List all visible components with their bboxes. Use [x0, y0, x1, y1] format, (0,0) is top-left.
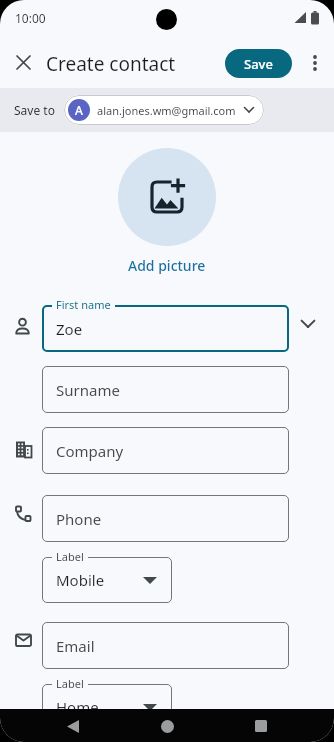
staticText: Save to: [14, 102, 55, 118]
button[interactable]: [154, 713, 180, 739]
button[interactable]: Company: [42, 427, 289, 474]
staticText: Surname: [56, 380, 120, 400]
staticText: Email: [56, 636, 95, 656]
staticText: Company: [56, 441, 124, 461]
staticText: Create contact: [46, 51, 176, 77]
button[interactable]: Add picture: [128, 256, 206, 275]
staticText: Label: [56, 549, 84, 564]
button[interactable]: Save: [225, 49, 292, 78]
staticText: A: [75, 102, 83, 118]
staticText: Zoe: [56, 319, 83, 339]
button[interactable]: Zoe: [42, 305, 289, 352]
button[interactable]: Email: [42, 622, 289, 669]
button[interactable]: Phone: [42, 495, 289, 542]
button[interactable]: [60, 713, 86, 739]
button[interactable]: Mobile: [42, 557, 172, 603]
button[interactable]: [248, 713, 274, 739]
button[interactable]: [300, 48, 330, 78]
staticText: Home: [56, 697, 99, 717]
button[interactable]: A: [64, 95, 264, 125]
staticText: Label: [56, 676, 84, 691]
staticText: Phone: [56, 509, 102, 529]
button[interactable]: [292, 308, 324, 340]
staticText: First name: [56, 297, 111, 312]
button[interactable]: Home: [42, 684, 172, 730]
staticText: alan.jones.wm@gmail.com: [97, 103, 236, 118]
staticText: Add picture: [128, 256, 206, 275]
staticText: Mobile: [56, 570, 105, 590]
staticText: Save: [244, 55, 273, 73]
button[interactable]: Surname: [42, 366, 289, 413]
button[interactable]: [118, 148, 216, 246]
button[interactable]: [8, 47, 38, 77]
staticText: 10:00: [15, 10, 46, 26]
